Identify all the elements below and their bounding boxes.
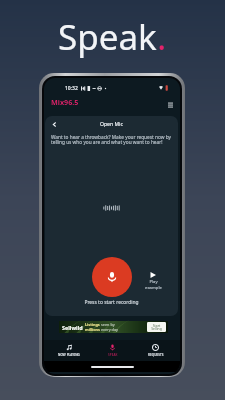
staticText: Listings	[85, 322, 100, 327]
staticText: seen by	[100, 322, 115, 327]
staticText: every day	[100, 327, 119, 332]
staticText: Open Mic	[100, 121, 123, 128]
staticText: NOW PLAYING	[58, 353, 80, 357]
staticText: Sellwild	[62, 324, 83, 331]
button[interactable]: SPEAK	[91, 340, 134, 361]
staticText: millions	[85, 327, 100, 332]
button[interactable]: Sellwild	[59, 321, 168, 333]
button[interactable]: Play example	[142, 272, 164, 290]
staticText: Want to hear a throwback? Make your requ…	[51, 134, 177, 146]
staticText: Play example	[145, 279, 162, 290]
staticText: Mix96.5	[51, 97, 79, 107]
button[interactable]: Menu	[165, 99, 176, 110]
staticText: 10:32	[65, 85, 78, 92]
button[interactable]: REQUESTS	[134, 340, 177, 361]
staticText: Start Selling	[151, 323, 162, 331]
staticText: REQUESTS	[148, 353, 164, 357]
button[interactable]: Start Selling	[147, 322, 166, 332]
staticText: Speak	[58, 13, 157, 61]
staticText: Press to start recording	[45, 299, 178, 306]
button[interactable]: Back	[48, 118, 60, 130]
staticText: .	[157, 13, 167, 61]
button[interactable]: Start recording	[92, 257, 132, 297]
button[interactable]: NOW PLAYING	[47, 340, 91, 361]
staticText: SPEAK	[108, 353, 118, 357]
